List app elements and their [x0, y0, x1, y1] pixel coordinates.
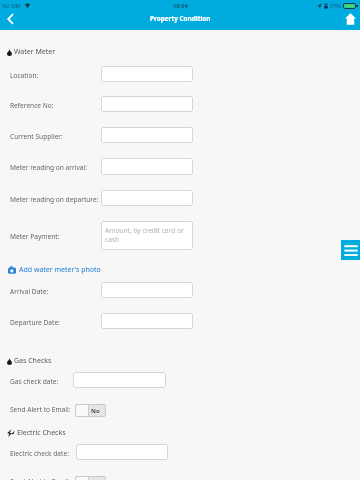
button[interactable]	[73, 372, 166, 388]
staticText: Reference No:	[10, 101, 54, 110]
staticText: Meter Payment:	[10, 232, 60, 241]
button[interactable]: Amount, by credit card or cash	[101, 221, 193, 250]
staticText: 97%	[330, 2, 341, 9]
staticText: 18:04	[173, 2, 188, 10]
button[interactable]	[101, 282, 193, 298]
button[interactable]: Water Meter	[7, 47, 56, 57]
button[interactable]: No	[75, 404, 106, 417]
button[interactable]: No	[75, 476, 106, 480]
staticText: Meter reading on departure:	[10, 195, 99, 204]
staticText: Send Alert to Email:	[10, 405, 71, 414]
staticText: Electric Checks	[17, 428, 66, 438]
button[interactable]: Back	[0, 9, 22, 28]
button[interactable]: Gas Checks	[7, 356, 52, 366]
staticText: Arrival Date:	[10, 287, 49, 296]
staticText: Gas check date:	[10, 377, 59, 386]
staticText: Location:	[10, 71, 39, 80]
button[interactable]: Add water meter's photo	[8, 264, 101, 275]
staticText: Departure Date:	[10, 318, 60, 327]
button[interactable]: Electric Checks	[7, 428, 66, 438]
button[interactable]	[101, 158, 193, 175]
staticText: Send Alert to Email:	[10, 477, 71, 480]
staticText: No SIM	[2, 2, 21, 9]
button[interactable]	[76, 444, 168, 460]
button[interactable]	[101, 96, 193, 112]
staticText: Property Condition	[150, 14, 211, 23]
staticText: Amount, by credit card or cash	[105, 226, 191, 244]
staticText: Add water meter's photo	[19, 265, 101, 275]
button[interactable]: Menu	[341, 240, 360, 260]
button[interactable]	[101, 190, 193, 206]
button[interactable]: Home	[339, 9, 360, 28]
staticText: Meter reading on arrival:	[10, 163, 87, 172]
staticText: Electric check date:	[10, 449, 69, 458]
button[interactable]	[101, 66, 193, 82]
staticText: Gas Checks	[14, 356, 52, 366]
staticText: Water Meter	[14, 47, 56, 57]
button[interactable]	[101, 127, 193, 143]
staticText: Current Supplier:	[10, 132, 63, 141]
staticText: No	[91, 407, 100, 415]
button[interactable]	[101, 313, 193, 329]
